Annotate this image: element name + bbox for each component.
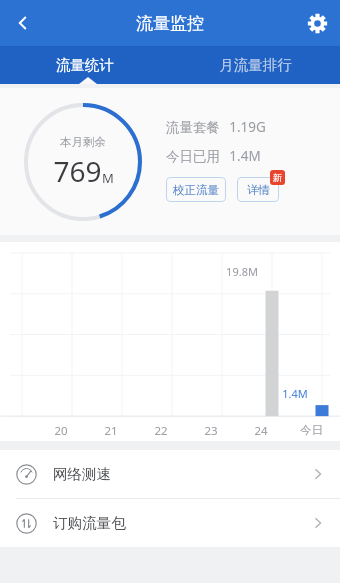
button[interactable]: 网络测速 bbox=[0, 450, 340, 498]
staticText: 23 bbox=[204, 423, 218, 439]
staticText: 流量统计 bbox=[56, 56, 114, 74]
staticText: 769 bbox=[53, 152, 102, 190]
staticText: 24 bbox=[254, 423, 268, 439]
staticText: 今日已用 bbox=[166, 148, 220, 165]
staticText: 20 bbox=[54, 423, 68, 439]
staticText: 流量套餐 bbox=[166, 119, 220, 136]
staticText: 新 bbox=[273, 172, 282, 183]
staticText: 22 bbox=[154, 423, 168, 439]
staticText: 1.4M bbox=[282, 386, 308, 401]
staticText: M bbox=[102, 169, 114, 187]
button[interactable]: Settings bbox=[294, 0, 340, 46]
staticText: 今日 bbox=[300, 423, 323, 437]
staticText: 1.19G bbox=[229, 118, 266, 136]
staticText: 流量监控 bbox=[136, 13, 204, 34]
staticText: 校正流量 bbox=[173, 183, 219, 197]
staticText: 21 bbox=[104, 423, 118, 439]
staticText: 订购流量包 bbox=[53, 514, 126, 532]
staticText: 1.4M bbox=[229, 147, 261, 165]
staticText: 网络测速 bbox=[53, 465, 111, 483]
button[interactable]: 校正流量 bbox=[166, 177, 226, 202]
staticText: 月流量排行 bbox=[219, 56, 292, 74]
button[interactable]: 流量统计 bbox=[0, 46, 170, 84]
button[interactable]: 详情 bbox=[237, 177, 279, 202]
staticText: 19.8M bbox=[226, 264, 258, 279]
staticText: 详情 bbox=[247, 183, 270, 197]
staticText: 本月剩余 bbox=[60, 135, 106, 149]
button[interactable]: Back bbox=[0, 0, 46, 46]
button[interactable]: 订购流量包 bbox=[0, 499, 340, 547]
button[interactable]: 月流量排行 bbox=[170, 46, 340, 84]
